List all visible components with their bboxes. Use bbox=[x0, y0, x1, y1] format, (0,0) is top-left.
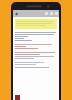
button[interactable]: Back bbox=[14, 11, 20, 17]
button[interactable] bbox=[15, 19, 57, 29]
